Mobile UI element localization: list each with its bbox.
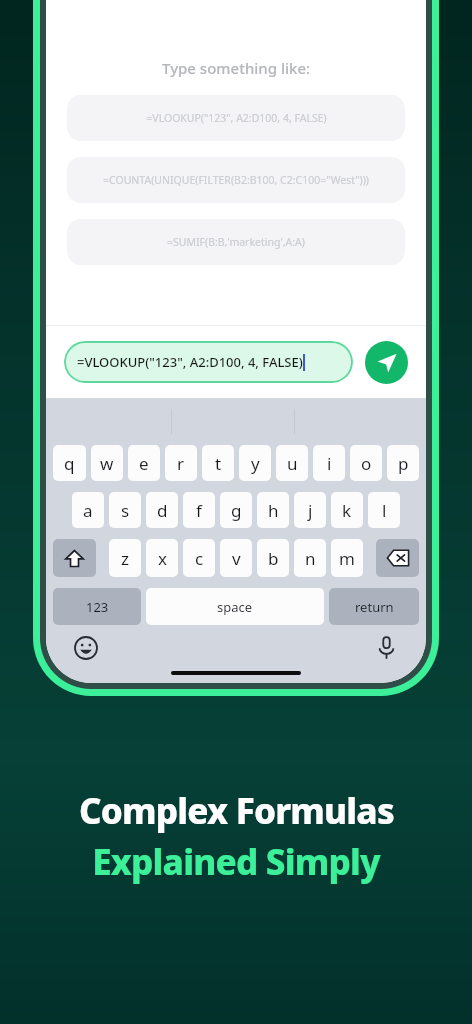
staticText: =COUNTA(UNIQUE(FILTER(B2:B100, C2:C100="… [103, 173, 369, 187]
button[interactable]: 123 [53, 588, 141, 625]
button[interactable]: space [146, 588, 324, 625]
staticText: a [83, 499, 93, 522]
staticText: u [287, 452, 298, 475]
staticText: l [382, 499, 387, 522]
button[interactable]: t [202, 445, 234, 481]
button[interactable]: h [257, 492, 289, 528]
staticText: c [195, 547, 204, 570]
staticText: Type something like: [162, 58, 311, 78]
button[interactable]: d [146, 492, 178, 528]
button[interactable]: u [276, 445, 308, 481]
button[interactable]: c [183, 539, 215, 577]
staticText: n [305, 547, 316, 570]
button[interactable]: b [257, 539, 289, 577]
button[interactable]: n [294, 539, 326, 577]
staticText: g [231, 499, 242, 522]
staticText: j [308, 499, 313, 522]
button[interactable]: e [128, 445, 160, 481]
button[interactable]: f [183, 492, 215, 528]
staticText: q [64, 452, 75, 475]
staticText: space [217, 598, 253, 616]
staticText: Explained Simply [92, 838, 380, 886]
button[interactable]: Send [365, 341, 408, 384]
button[interactable]: g [220, 492, 252, 528]
button[interactable]: r [165, 445, 197, 481]
button[interactable]: y [239, 445, 271, 481]
staticText: Complex Formulas [79, 787, 394, 835]
button[interactable]: l [368, 492, 400, 528]
button[interactable]: m [331, 539, 363, 577]
staticText: s [121, 499, 130, 522]
button[interactable]: p [387, 445, 419, 481]
staticText: =VLOOKUP("123", A2:D100, 4, FALSE) [77, 353, 303, 371]
button[interactable]: Dictation [373, 634, 400, 661]
button[interactable]: Shift [53, 539, 96, 577]
staticText: v [232, 547, 241, 570]
staticText: m [339, 547, 355, 570]
button[interactable]: =VLOOKUP("123", A2:D100, 4, FALSE) [64, 341, 353, 383]
button[interactable]: =SUMIF(B:B,'marketing',A:A) [67, 219, 405, 265]
button[interactable]: i [313, 445, 345, 481]
button[interactable]: j [294, 492, 326, 528]
staticText: y [251, 452, 260, 475]
staticText: 123 [86, 598, 109, 616]
staticText: i [327, 452, 332, 475]
button[interactable]: q [53, 445, 86, 481]
staticText: b [268, 547, 279, 570]
button[interactable]: w [91, 445, 123, 481]
staticText: =VLOOKUP("123", A2:D100, 4, FALSE) [146, 111, 327, 125]
staticText: p [398, 452, 409, 475]
button[interactable]: a [72, 492, 104, 528]
staticText: r [177, 452, 185, 475]
button[interactable]: o [350, 445, 382, 481]
staticText: =SUMIF(B:B,'marketing',A:A) [167, 235, 305, 249]
staticText: f [196, 499, 202, 522]
button[interactable]: x [146, 539, 178, 577]
staticText: o [361, 452, 372, 475]
staticText: return [355, 598, 394, 616]
staticText: z [121, 547, 129, 570]
staticText: w [100, 452, 114, 475]
button[interactable]: =VLOOKUP("123", A2:D100, 4, FALSE) [67, 95, 405, 141]
button[interactable]: return [329, 588, 419, 625]
staticText: h [268, 499, 279, 522]
button[interactable]: k [331, 492, 363, 528]
button[interactable]: Emoji keyboard [72, 634, 99, 661]
button[interactable]: z [109, 539, 141, 577]
staticText: x [158, 547, 167, 570]
staticText: k [342, 499, 352, 522]
button[interactable]: =COUNTA(UNIQUE(FILTER(B2:B100, C2:C100="… [67, 157, 405, 203]
staticText: t [215, 452, 222, 475]
button[interactable]: s [109, 492, 141, 528]
button[interactable]: Backspace [376, 539, 419, 577]
staticText: d [157, 499, 168, 522]
staticText: e [139, 452, 149, 475]
button[interactable]: v [220, 539, 252, 577]
